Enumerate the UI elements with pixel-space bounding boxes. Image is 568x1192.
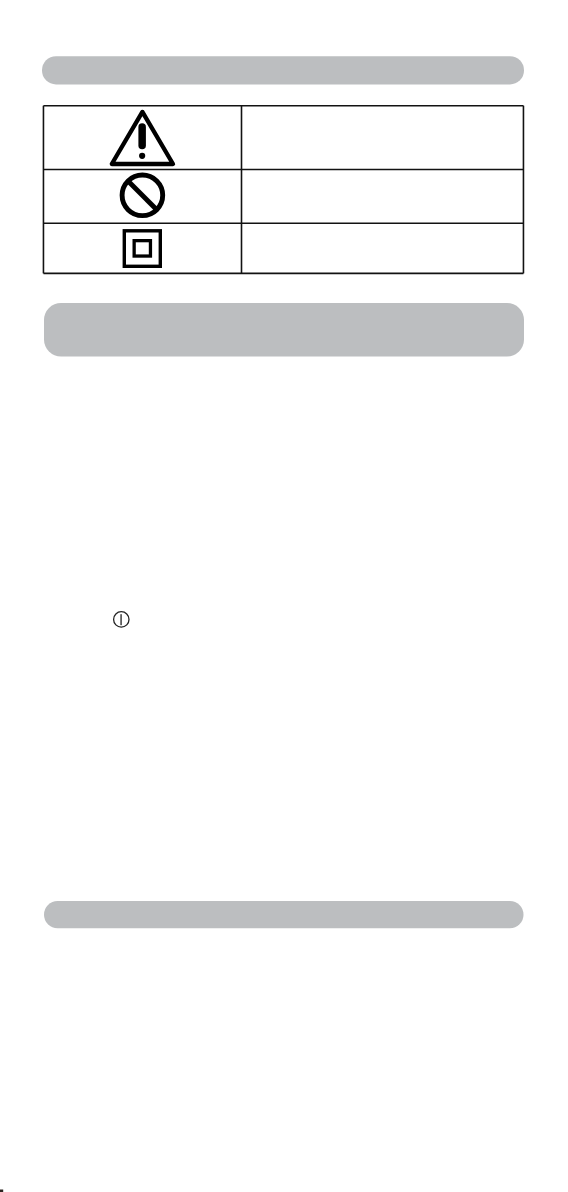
button[interactable]: Warning symbol row xyxy=(44,106,524,170)
button[interactable]: Important safety instructions xyxy=(44,303,524,357)
button[interactable]: Prohibition symbol row xyxy=(44,170,524,224)
button[interactable]: Class II symbol row xyxy=(44,223,524,273)
button[interactable]: Additional information xyxy=(44,901,524,928)
button[interactable]: Safety symbols section xyxy=(42,56,524,84)
button[interactable]: Note xyxy=(108,606,136,634)
